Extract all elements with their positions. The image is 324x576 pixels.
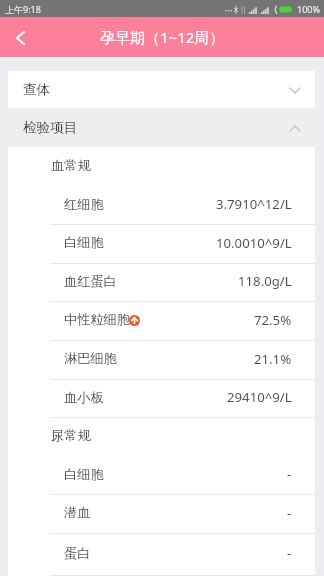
- staticText: 白细胞: [64, 466, 104, 483]
- staticText: 红细胞: [64, 196, 104, 213]
- button[interactable]: 检验项目: [8, 108, 315, 147]
- button[interactable]: 查体: [8, 71, 315, 108]
- staticText: 血小板: [64, 389, 104, 406]
- staticText: 血红蛋白: [64, 273, 117, 290]
- staticText: 尿常规: [51, 427, 91, 444]
- button[interactable]: 血红蛋白: [8, 264, 315, 302]
- staticText: -: [287, 544, 292, 562]
- button[interactable]: Back: [0, 17, 40, 57]
- staticText: 29410^9/L: [227, 388, 292, 406]
- staticText: 3.7910^12/L: [216, 195, 292, 213]
- button[interactable]: 白细胞: [8, 457, 315, 495]
- staticText: 血常规: [51, 157, 91, 174]
- button[interactable]: 潜血: [8, 495, 315, 534]
- button[interactable]: 血常规: [8, 147, 315, 187]
- button[interactable]: 白细胞: [8, 225, 315, 264]
- button[interactable]: 蛋白: [8, 534, 315, 576]
- staticText: 淋巴细胞: [64, 350, 117, 367]
- staticText: 查体: [23, 81, 51, 98]
- staticText: 白细胞: [64, 234, 104, 251]
- staticText: 中性粒细胞: [64, 311, 130, 328]
- staticText: 潜血: [64, 504, 91, 521]
- staticText: 蛋白: [64, 545, 91, 562]
- staticText: 118.0g/L: [238, 272, 292, 290]
- staticText: 72.5%: [254, 311, 292, 329]
- button[interactable]: 淋巴细胞: [8, 341, 315, 380]
- staticText: -: [287, 504, 292, 522]
- staticText: 21.1%: [254, 350, 292, 368]
- staticText: 上午9:18: [5, 3, 41, 15]
- button[interactable]: 尿常规: [8, 418, 315, 457]
- button[interactable]: 红细胞: [8, 187, 315, 225]
- staticText: -: [287, 465, 292, 483]
- staticText: 100%: [297, 3, 320, 15]
- staticText: 孕早期（1~12周）: [100, 27, 225, 47]
- staticText: 检验项目: [23, 119, 78, 136]
- button[interactable]: 血小板: [8, 380, 315, 418]
- button[interactable]: 中性粒细胞: [8, 302, 315, 341]
- staticText: 10.0010^9/L: [216, 234, 292, 252]
